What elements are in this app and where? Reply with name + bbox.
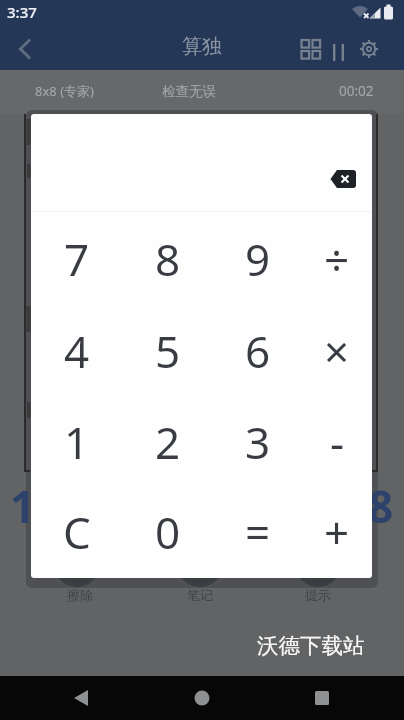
- staticText: 擦除: [67, 587, 93, 603]
- button[interactable]: 0: [126, 488, 210, 576]
- button[interactable]: 笔记: [160, 584, 240, 606]
- staticText: 8: [155, 229, 181, 289]
- staticText: 笔记: [187, 587, 213, 603]
- staticText: 4: [64, 321, 90, 381]
- button[interactable]: 8: [126, 215, 210, 303]
- button[interactable]: ×: [295, 307, 379, 395]
- staticText: -: [330, 412, 345, 472]
- button[interactable]: 1: [35, 398, 119, 486]
- button[interactable]: [62, 679, 100, 717]
- staticText: 8x8 (专家): [35, 82, 94, 100]
- button[interactable]: [326, 34, 350, 64]
- staticText: 算独: [182, 34, 222, 59]
- staticText: =: [245, 502, 271, 562]
- button[interactable]: ÷: [295, 215, 379, 303]
- staticText: 7: [64, 229, 90, 289]
- staticText: 5: [155, 321, 181, 381]
- button[interactable]: 3: [216, 398, 300, 486]
- staticText: 00:02: [339, 82, 374, 100]
- button[interactable]: -: [295, 398, 379, 486]
- staticText: 提示: [305, 587, 331, 603]
- staticText: 8: [368, 476, 394, 536]
- staticText: 1: [10, 476, 36, 536]
- button[interactable]: [177, 541, 223, 587]
- button[interactable]: [296, 34, 326, 64]
- button[interactable]: =: [216, 488, 300, 576]
- staticText: 沃德下载站: [257, 632, 365, 659]
- staticText: 6: [245, 321, 271, 381]
- button[interactable]: [354, 34, 384, 64]
- button[interactable]: 9: [216, 215, 300, 303]
- staticText: +: [324, 502, 350, 562]
- button[interactable]: C: [35, 488, 119, 576]
- button[interactable]: 2: [126, 398, 210, 486]
- staticText: 9: [245, 229, 271, 289]
- button[interactable]: [303, 679, 341, 717]
- button[interactable]: [8, 32, 42, 66]
- button[interactable]: 提示: [278, 584, 358, 606]
- staticText: ×: [324, 321, 350, 381]
- staticText: 0: [155, 502, 181, 562]
- staticText: 3:37: [7, 2, 37, 22]
- staticText: C: [63, 502, 91, 562]
- button[interactable]: 4: [35, 307, 119, 395]
- staticText: 2: [155, 412, 181, 472]
- button[interactable]: 6: [216, 307, 300, 395]
- button[interactable]: [54, 541, 100, 587]
- staticText: 检查无误: [162, 83, 216, 100]
- button[interactable]: [183, 679, 221, 717]
- button[interactable]: 擦除: [40, 584, 120, 606]
- staticText: 3: [245, 412, 271, 472]
- button[interactable]: +: [295, 488, 379, 576]
- button[interactable]: 7: [35, 215, 119, 303]
- button[interactable]: 5: [126, 307, 210, 395]
- staticText: 1: [64, 412, 90, 472]
- staticText: ÷: [324, 229, 350, 289]
- button[interactable]: [295, 541, 341, 587]
- button[interactable]: [323, 162, 363, 196]
